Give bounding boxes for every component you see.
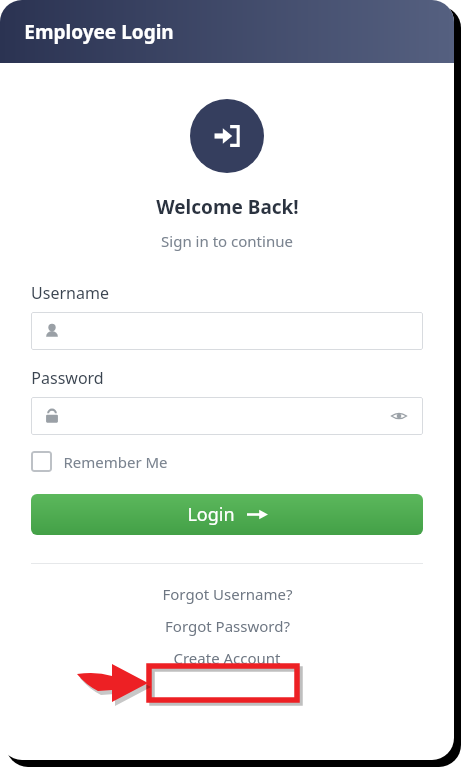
button[interactable]: Create Account	[173, 648, 281, 668]
staticText: Forgot Username?	[162, 584, 293, 604]
button[interactable]: Login	[31, 494, 423, 535]
staticText: Forgot Password?	[165, 616, 290, 636]
staticText: Remember Me	[63, 452, 168, 472]
staticText: Login	[187, 502, 235, 527]
button[interactable]: Forgot Password?	[165, 616, 290, 636]
staticText: Create Account	[173, 648, 281, 668]
staticText: Username	[31, 282, 109, 304]
button[interactable]: Show password	[388, 405, 410, 427]
staticText: Password	[31, 367, 104, 389]
button[interactable]: Show password	[31, 397, 423, 435]
button[interactable]: Remember Me	[31, 451, 423, 472]
button[interactable]	[31, 312, 423, 350]
staticText: Employee Login	[24, 19, 174, 45]
staticText: Sign in to continue	[161, 231, 293, 251]
staticText: Welcome Back!	[156, 194, 299, 220]
button[interactable]: Forgot Username?	[162, 584, 293, 604]
